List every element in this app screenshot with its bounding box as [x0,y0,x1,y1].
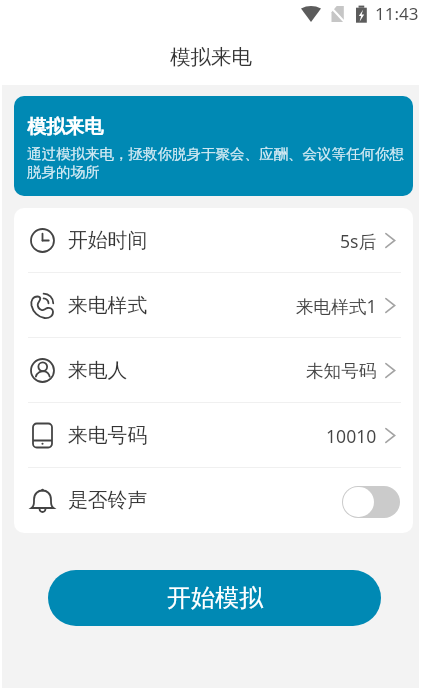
staticText: 11:43 [375,2,419,25]
staticText: 是否铃声 [68,488,148,513]
staticText: 来电人 [68,358,128,383]
staticText: 开始时间 [68,228,148,253]
staticText: 来电样式 [68,293,148,318]
staticText: 未知号码 [306,360,377,382]
button[interactable]: 来电号码 [14,403,413,468]
staticText: 模拟来电 [27,115,103,139]
button[interactable]: 模拟来电 [14,96,413,196]
button[interactable]: 开始模拟 [48,570,381,626]
staticText: 开始模拟 [167,583,263,613]
staticText: 模拟来电 [170,44,252,70]
staticText: 5s后 [340,229,377,253]
staticText: 10010 [326,424,377,448]
staticText: 来电样式1 [296,294,377,318]
button[interactable]: 是否铃声 [14,468,413,533]
button[interactable]: 来电样式 [14,273,413,338]
button[interactable]: 来电人 [14,338,413,403]
staticText: 来电号码 [68,423,148,448]
button[interactable]: Ringtone toggle [342,486,400,518]
button[interactable]: 开始时间 [14,208,413,273]
staticText: 通过模拟来电，拯救你脱身于聚会、应酬、会议等任何你想脱身的场所 [27,145,404,182]
